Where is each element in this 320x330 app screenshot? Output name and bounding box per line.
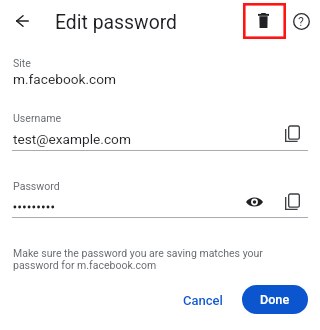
staticText: Cancel xyxy=(183,293,223,308)
button[interactable]: Done xyxy=(242,285,308,314)
staticText: Site xyxy=(13,57,31,69)
staticText: Make sure the password you are saving ma… xyxy=(13,247,271,272)
staticText: Done xyxy=(260,292,290,307)
staticText: m.facebook.com xyxy=(13,71,117,87)
button[interactable]: Show password xyxy=(241,189,267,215)
button[interactable]: Copy password xyxy=(279,189,305,215)
staticText: Password xyxy=(13,180,60,192)
staticText: Username xyxy=(13,112,62,124)
staticText: Edit password xyxy=(55,11,178,34)
staticText: test@example.com xyxy=(13,131,131,147)
button[interactable]: Back xyxy=(6,5,38,37)
button[interactable]: Cancel xyxy=(171,286,235,315)
staticText: ? xyxy=(298,14,304,29)
button[interactable]: Delete xyxy=(243,3,286,39)
button[interactable]: Help xyxy=(287,7,315,35)
button[interactable]: Copy username xyxy=(279,121,305,147)
